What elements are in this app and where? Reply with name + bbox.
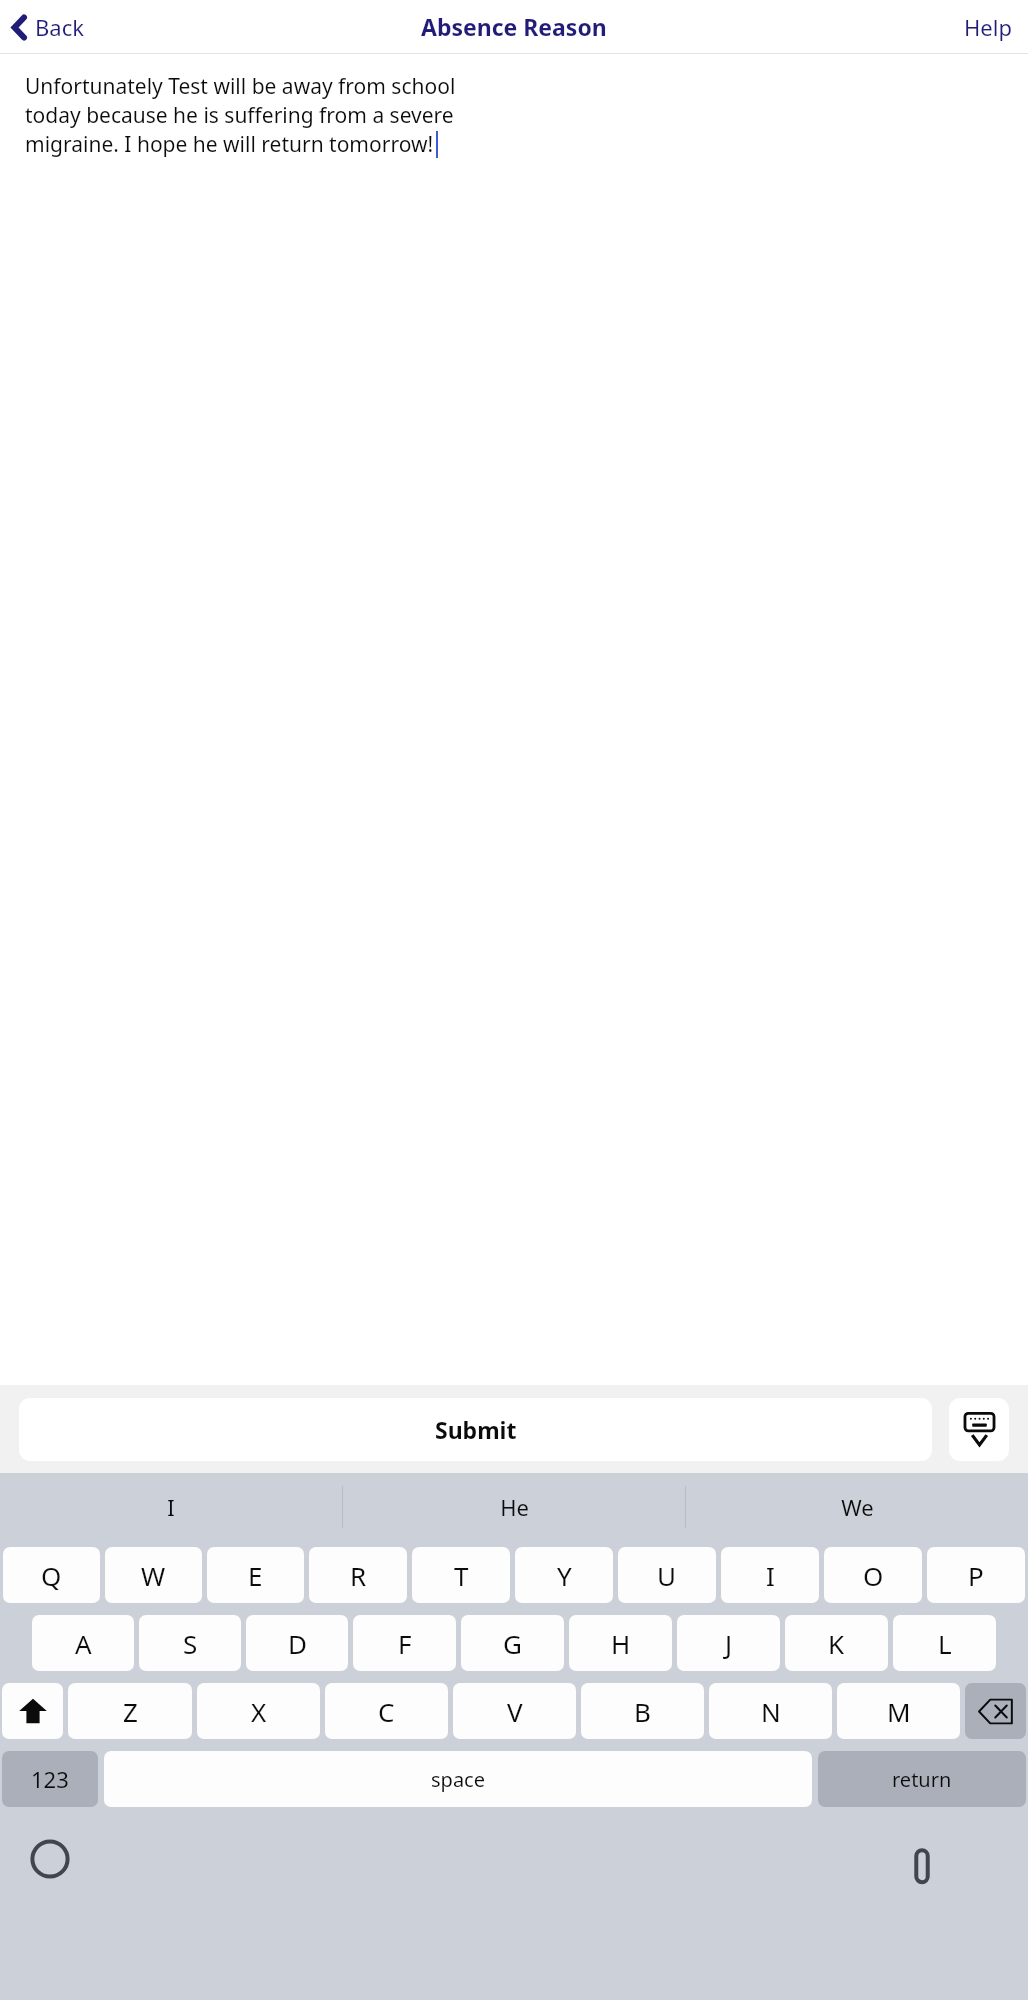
button[interactable]: Shift: [2, 1683, 63, 1739]
button[interactable]: Back: [6, 6, 90, 48]
button[interactable]: I: [0, 1473, 342, 1541]
button[interactable]: Unfortunately Test will be away from sch…: [0, 54, 1028, 1385]
button[interactable]: O: [824, 1547, 922, 1603]
staticText: We: [841, 1492, 874, 1522]
button[interactable]: He: [343, 1473, 685, 1541]
button[interactable]: C: [325, 1683, 448, 1739]
staticText: E: [248, 1558, 263, 1593]
staticText: Y: [557, 1558, 572, 1593]
button[interactable]: R: [309, 1547, 407, 1603]
button[interactable]: N: [709, 1683, 832, 1739]
button[interactable]: T: [412, 1547, 510, 1603]
staticText: Q: [41, 1558, 62, 1593]
staticText: today because he is suffering from a sev…: [25, 101, 454, 130]
button[interactable]: L: [893, 1615, 996, 1671]
staticText: L: [938, 1626, 952, 1661]
button[interactable]: X: [197, 1683, 320, 1739]
button[interactable]: G: [461, 1615, 564, 1671]
staticText: N: [761, 1694, 781, 1729]
staticText: K: [828, 1626, 845, 1661]
button[interactable]: I: [721, 1547, 819, 1603]
button[interactable]: space: [104, 1751, 812, 1807]
staticText: W: [141, 1558, 166, 1593]
staticText: U: [657, 1558, 677, 1593]
staticText: B: [634, 1694, 651, 1729]
button[interactable]: Backspace: [965, 1683, 1026, 1739]
button[interactable]: K: [785, 1615, 888, 1671]
button[interactable]: F: [353, 1615, 456, 1671]
staticText: Help: [964, 12, 1012, 42]
button[interactable]: 123: [2, 1751, 98, 1807]
staticText: Submit: [435, 1414, 517, 1445]
button[interactable]: S: [139, 1615, 241, 1671]
staticText: P: [968, 1558, 984, 1593]
staticText: R: [350, 1558, 367, 1593]
button[interactable]: B: [581, 1683, 704, 1739]
button[interactable]: W: [105, 1547, 202, 1603]
staticText: I: [167, 1492, 175, 1522]
staticText: C: [378, 1694, 395, 1729]
staticText: Unfortunately Test will be away from sch…: [25, 72, 456, 101]
button[interactable]: M: [837, 1683, 960, 1739]
staticText: D: [288, 1626, 307, 1661]
button[interactable]: U: [618, 1547, 716, 1603]
staticText: H: [611, 1626, 631, 1661]
staticText: G: [503, 1626, 522, 1661]
button[interactable]: Y: [515, 1547, 613, 1603]
staticText: A: [75, 1626, 92, 1661]
staticText: Back: [35, 12, 84, 42]
staticText: I: [766, 1558, 775, 1593]
button[interactable]: P: [927, 1547, 1025, 1603]
staticText: J: [725, 1626, 733, 1661]
button[interactable]: Emoji: [2, 1831, 98, 1871]
button[interactable]: Submit: [19, 1398, 932, 1461]
staticText: X: [251, 1694, 267, 1729]
button[interactable]: D: [246, 1615, 348, 1671]
staticText: V: [507, 1694, 523, 1729]
staticText: space: [431, 1766, 485, 1793]
staticText: return: [892, 1766, 952, 1793]
button[interactable]: return: [818, 1751, 1026, 1807]
staticText: S: [183, 1626, 198, 1661]
staticText: migraine. I hope he will return tomorrow…: [25, 130, 434, 159]
button[interactable]: E: [207, 1547, 304, 1603]
button[interactable]: Hide keyboard: [949, 1398, 1009, 1461]
staticText: M: [887, 1694, 911, 1729]
button[interactable]: Z: [68, 1683, 192, 1739]
staticText: Z: [123, 1694, 138, 1729]
button[interactable]: Dictation: [818, 1831, 1026, 1871]
button[interactable]: A: [32, 1615, 134, 1671]
staticText: T: [454, 1558, 469, 1593]
staticText: He: [500, 1492, 529, 1522]
staticText: 123: [31, 1764, 69, 1794]
staticText: Absence Reason: [421, 11, 607, 42]
button[interactable]: V: [453, 1683, 576, 1739]
button[interactable]: We: [686, 1473, 1028, 1541]
button[interactable]: Q: [3, 1547, 100, 1603]
staticText: O: [863, 1558, 884, 1593]
button[interactable]: J: [677, 1615, 780, 1671]
staticText: F: [398, 1626, 412, 1661]
button[interactable]: H: [569, 1615, 672, 1671]
button[interactable]: Help: [958, 6, 1018, 48]
